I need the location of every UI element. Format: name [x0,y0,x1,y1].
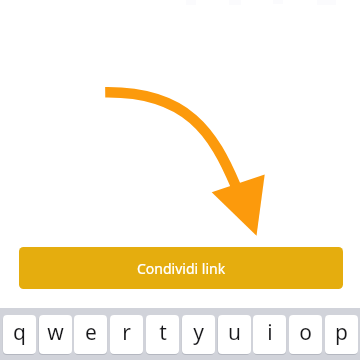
button[interactable]: q [3,315,36,354]
button[interactable]: w [39,315,72,354]
staticText: e [85,318,97,347]
button[interactable]: i [253,315,286,354]
staticText: o [299,318,312,347]
staticText: p [335,318,348,347]
staticText: t [159,318,167,347]
other: Arrow pointing to share button [0,0,360,360]
staticText: q [13,318,26,347]
button[interactable]: t [146,315,179,354]
staticText: u [228,318,241,347]
button[interactable]: r [110,315,143,354]
button[interactable]: o [289,315,322,354]
button[interactable]: u [218,315,251,354]
staticText: Condividi link [137,259,226,278]
staticText: w [47,318,64,347]
button[interactable]: p [325,315,358,354]
button[interactable]: e [74,315,107,354]
staticText: i [267,318,273,347]
button[interactable]: y [182,315,215,354]
button[interactable]: Condividi link [19,247,343,289]
staticText: y [193,318,204,347]
staticText: r [122,318,131,347]
